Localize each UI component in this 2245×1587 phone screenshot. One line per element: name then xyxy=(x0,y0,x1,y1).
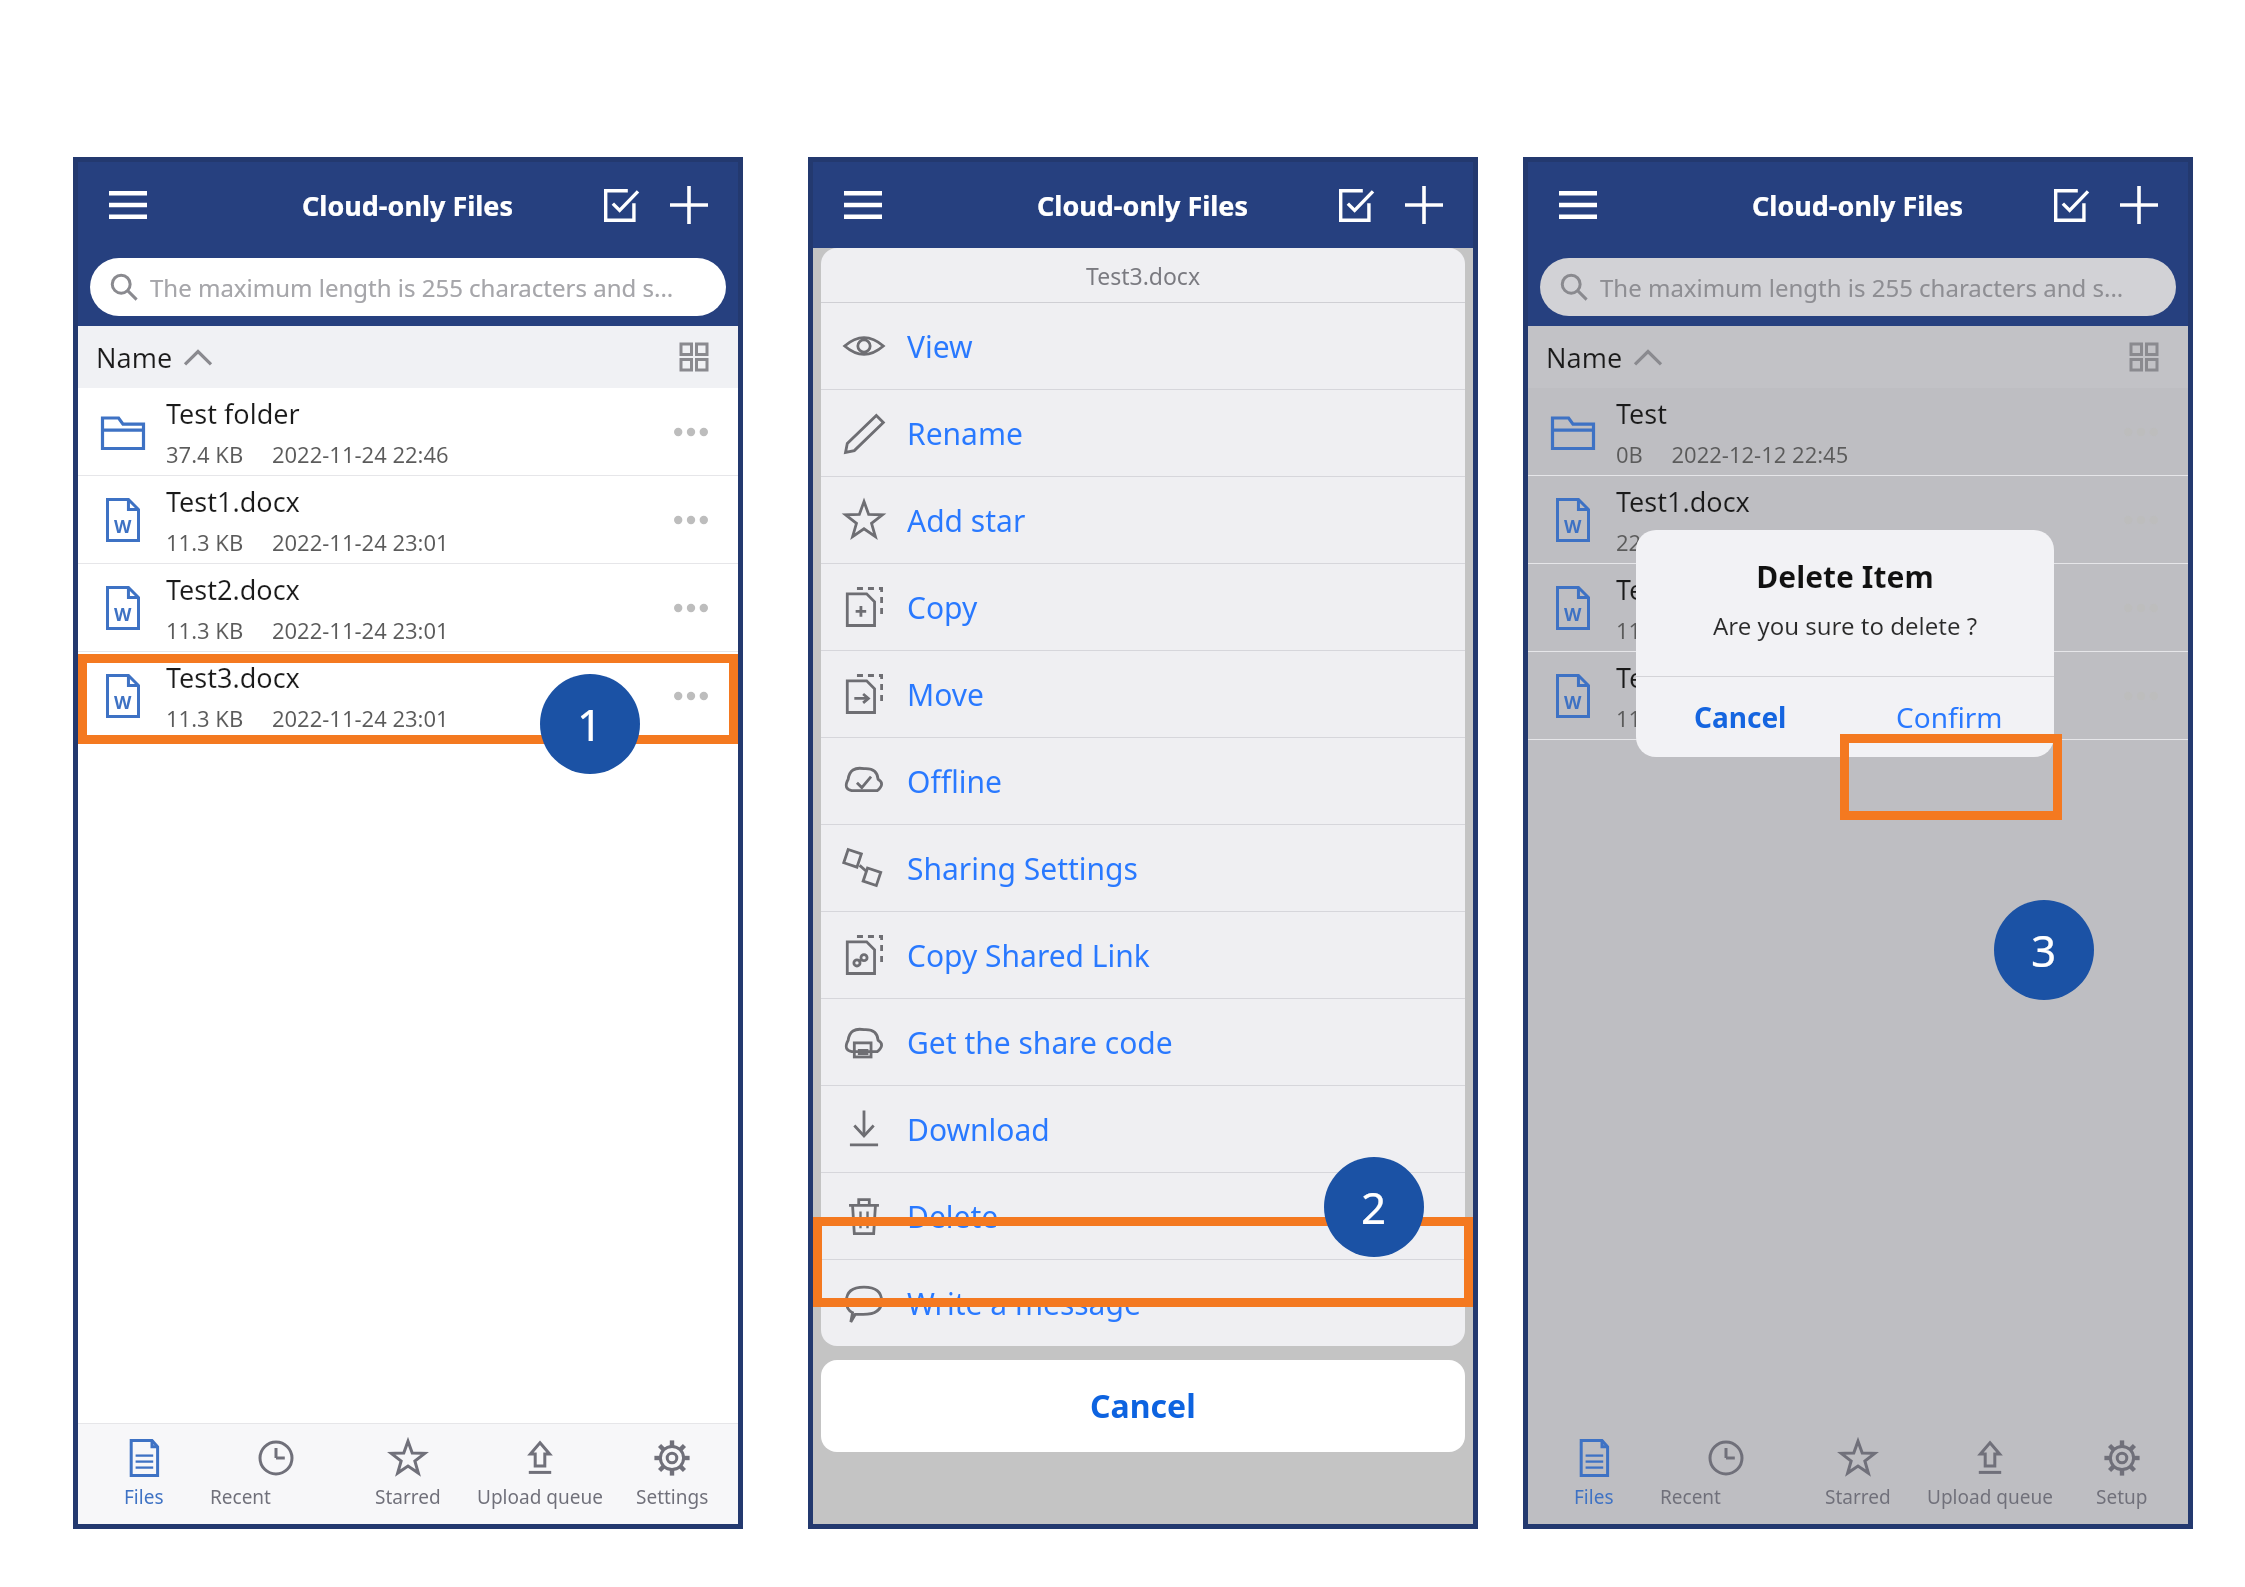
button[interactable]: Settings xyxy=(606,1424,738,1524)
staticText: Are you sure to delete ? xyxy=(1636,609,2054,642)
button[interactable]: Cancel xyxy=(821,1360,1465,1452)
staticText: Test3.docx xyxy=(166,659,300,696)
staticText: Settings xyxy=(636,1484,709,1510)
staticText: Cloud-only Files xyxy=(1752,187,1964,224)
button[interactable]: Grid view xyxy=(2122,335,2166,379)
staticText: 11.3 KB 2022-12-12 22:44 xyxy=(1616,703,1899,733)
button[interactable]: Copy Shared Link xyxy=(821,912,1465,998)
button[interactable]: The maximum length is 255 characters and… xyxy=(90,258,726,316)
button[interactable]: More options xyxy=(666,407,716,457)
button[interactable]: The maximum length is 255 characters and… xyxy=(1540,258,2176,316)
button[interactable]: Test xyxy=(1528,388,2188,476)
button[interactable]: Confirm xyxy=(1845,677,2054,757)
button[interactable]: Select items xyxy=(2044,178,2098,232)
button[interactable]: Menu xyxy=(100,177,156,233)
staticText: 3 xyxy=(2031,920,2057,980)
staticText: Add star xyxy=(907,500,1026,541)
button[interactable]: W xyxy=(78,652,738,740)
staticText: 0B 2022-12-12 22:45 xyxy=(1616,439,1849,469)
button[interactable]: Get the share code xyxy=(821,999,1465,1085)
button[interactable]: Add xyxy=(1397,178,1451,232)
button[interactable]: Cancel xyxy=(1636,677,1845,757)
staticText: Starred xyxy=(375,1484,441,1510)
staticText: Test2.docx xyxy=(1616,571,1750,608)
staticText: W xyxy=(114,690,132,715)
button[interactable]: Upload queue xyxy=(1924,1424,2056,1524)
button[interactable]: More options xyxy=(666,583,716,633)
button[interactable]: Name xyxy=(96,339,211,376)
staticText: Offline xyxy=(907,761,1003,802)
button[interactable]: Files xyxy=(78,1424,210,1524)
staticText: Cancel xyxy=(1090,1384,1196,1428)
button[interactable]: Grid view xyxy=(672,335,716,379)
button[interactable]: Download xyxy=(821,1086,1465,1172)
staticText: Cloud-only Files xyxy=(302,187,514,224)
button[interactable]: Add xyxy=(2112,178,2166,232)
staticText: Test2.docx xyxy=(166,571,300,608)
staticText: Download xyxy=(907,1109,1050,1150)
staticText: Cancel xyxy=(1694,698,1787,736)
button[interactable]: View xyxy=(821,303,1465,389)
staticText: 11.3 KB 2022-11-24 23:01 xyxy=(166,615,449,645)
button[interactable]: Add star xyxy=(821,477,1465,563)
button[interactable]: Menu xyxy=(835,177,891,233)
button[interactable]: Offline xyxy=(821,738,1465,824)
staticText: Test1.docx xyxy=(166,483,300,520)
staticText: Delete xyxy=(907,1196,999,1237)
button[interactable]: Move xyxy=(821,651,1465,737)
staticText: Copy Shared Link xyxy=(907,935,1150,976)
staticText: Test1.docx xyxy=(1616,483,1750,520)
staticText: The maximum length is 255 characters and… xyxy=(1600,271,2124,304)
staticText: Name xyxy=(96,339,173,376)
staticText: W xyxy=(1564,514,1582,539)
button[interactable]: Upload queue xyxy=(474,1424,606,1524)
button[interactable]: Menu xyxy=(1550,177,1606,233)
button[interactable]: W xyxy=(1528,652,2188,740)
staticText: Test folder xyxy=(166,395,300,432)
button[interactable]: Recent Changes xyxy=(1660,1424,1792,1524)
staticText: 2 xyxy=(1361,1177,1387,1237)
button[interactable]: W xyxy=(78,564,738,652)
staticText: View xyxy=(907,326,973,367)
button[interactable]: Rename xyxy=(821,390,1465,476)
staticText: Rename xyxy=(907,413,1023,454)
staticText: Files xyxy=(124,1484,164,1510)
staticText: Setup xyxy=(2096,1484,2148,1510)
button[interactable]: Starred xyxy=(1792,1424,1924,1524)
button[interactable]: Add xyxy=(662,178,716,232)
button[interactable]: W xyxy=(1528,476,2188,564)
staticText: W xyxy=(1564,690,1582,715)
button[interactable]: Copy xyxy=(821,564,1465,650)
button[interactable]: Name xyxy=(1546,339,1661,376)
button[interactable]: Select items xyxy=(594,178,648,232)
staticText: Delete Item xyxy=(1636,556,2054,597)
button[interactable]: W xyxy=(78,476,738,564)
staticText: Get the share code xyxy=(907,1022,1173,1063)
button[interactable]: Delete xyxy=(821,1173,1465,1259)
staticText: Confirm xyxy=(1896,698,2003,736)
button[interactable]: Starred xyxy=(342,1424,474,1524)
staticText: Copy xyxy=(907,587,978,628)
button[interactable]: Select items xyxy=(1329,178,1383,232)
staticText: W xyxy=(114,602,132,627)
button[interactable]: Files xyxy=(1528,1424,1660,1524)
staticText: Upload queue xyxy=(477,1484,603,1510)
staticText: 1 xyxy=(577,694,603,754)
button[interactable]: W xyxy=(1528,564,2188,652)
button[interactable]: Sharing Settings xyxy=(821,825,1465,911)
staticText: 22.1 KB 2022-12-12 22:44 xyxy=(1616,527,1899,557)
button[interactable]: Test folder xyxy=(78,388,738,476)
button[interactable]: Recent Changes xyxy=(210,1424,342,1524)
staticText: Recent Changes xyxy=(210,1484,342,1510)
button[interactable]: More options xyxy=(666,671,716,721)
button[interactable]: Setup xyxy=(2056,1424,2188,1524)
staticText: Move xyxy=(907,674,984,715)
staticText: Starred xyxy=(1825,1484,1891,1510)
button[interactable]: Write a message xyxy=(821,1260,1465,1346)
staticText: Files xyxy=(1574,1484,1614,1510)
button[interactable]: More options xyxy=(666,495,716,545)
